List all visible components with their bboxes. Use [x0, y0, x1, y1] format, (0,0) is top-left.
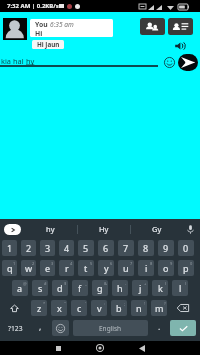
button[interactable]: Home: [92, 341, 108, 355]
button[interactable]: ,: [33, 320, 48, 336]
button[interactable]: Send: [178, 54, 198, 71]
staticText: l: [179, 282, 182, 294]
button[interactable]: Hy: [77, 219, 130, 239]
button[interactable]: f: [72, 280, 88, 296]
button[interactable]: j: [132, 280, 148, 296]
button[interactable]: Voice input: [184, 223, 196, 235]
button[interactable]: .: [152, 320, 166, 336]
staticText: x: [57, 302, 62, 314]
staticText: s: [38, 282, 43, 294]
button[interactable]: Backspace: [171, 300, 194, 316]
button[interactable]: t: [78, 260, 94, 276]
button[interactable]: Gy: [130, 219, 183, 239]
button[interactable]: e: [40, 260, 55, 276]
button[interactable]: Sound: [174, 41, 186, 51]
button[interactable]: Enter: [170, 320, 196, 336]
staticText: @: [23, 281, 27, 286]
staticText: t: [84, 262, 88, 274]
button[interactable]: l: [172, 280, 188, 296]
button[interactable]: 4: [59, 240, 74, 256]
button[interactable]: 2: [21, 240, 36, 256]
staticText: 1: [13, 261, 16, 266]
staticText: w: [25, 262, 33, 274]
button[interactable]: g: [92, 280, 108, 296]
staticText: Hy: [99, 224, 109, 234]
button[interactable]: y: [98, 260, 114, 276]
staticText: 8: [150, 261, 153, 266]
staticText: d: [57, 282, 63, 294]
staticText: .: [158, 321, 161, 333]
staticText: y: [104, 262, 109, 274]
button[interactable]: ?123: [2, 320, 29, 336]
staticText: +: [144, 281, 147, 286]
staticText: 7: [123, 242, 129, 254]
button[interactable]: You: [30, 19, 113, 37]
button[interactable]: m: [151, 300, 167, 316]
staticText: ?: [164, 301, 166, 306]
button[interactable]: r: [59, 260, 74, 276]
button[interactable]: Recents: [50, 341, 66, 355]
staticText: 9: [163, 242, 169, 254]
staticText: Hi: [35, 29, 43, 37]
staticText: h: [117, 282, 123, 294]
button[interactable]: w: [21, 260, 36, 276]
staticText: 0: [183, 242, 189, 254]
staticText: m: [155, 302, 164, 314]
staticText: ;: [124, 301, 126, 306]
staticText: Gy: [152, 224, 162, 234]
button[interactable]: v: [91, 300, 107, 316]
staticText: 1: [7, 242, 13, 254]
button[interactable]: 6: [98, 240, 114, 256]
staticText: ,: [39, 321, 42, 333]
button[interactable]: 1: [2, 240, 17, 256]
staticText: j: [139, 282, 142, 294]
button[interactable]: n: [131, 300, 147, 316]
button[interactable]: k: [152, 280, 168, 296]
button[interactable]: b: [111, 300, 127, 316]
staticText: z: [37, 302, 42, 314]
button[interactable]: a: [12, 280, 28, 296]
button[interactable]: 9: [158, 240, 174, 256]
staticText: u: [123, 262, 129, 274]
button[interactable]: d: [52, 280, 68, 296]
button[interactable]: More suggestions: [4, 224, 21, 235]
staticText: English: [99, 324, 122, 333]
button[interactable]: 3: [40, 240, 55, 256]
button[interactable]: p: [178, 260, 194, 276]
button[interactable]: Shift: [2, 300, 27, 316]
button[interactable]: s: [32, 280, 48, 296]
button[interactable]: 0: [178, 240, 194, 256]
staticText: hy: [46, 224, 55, 234]
staticText: 6: [103, 242, 109, 254]
staticText: !: [144, 301, 146, 306]
button[interactable]: u: [118, 260, 134, 276]
button[interactable]: 5: [78, 240, 94, 256]
button[interactable]: z: [31, 300, 47, 316]
staticText: (: [165, 281, 167, 286]
staticText: 6: [110, 261, 113, 266]
button[interactable]: Hi Jaun: [32, 40, 64, 49]
button[interactable]: English: [73, 320, 148, 336]
button[interactable]: hy: [24, 219, 77, 239]
staticText: ": [64, 301, 66, 306]
button[interactable]: h: [112, 280, 128, 296]
button[interactable]: Group: [140, 18, 165, 35]
button[interactable]: Contacts: [168, 18, 193, 35]
button[interactable]: 7: [118, 240, 134, 256]
staticText: 3: [51, 261, 54, 266]
button[interactable]: x: [51, 300, 67, 316]
button[interactable]: c: [71, 300, 87, 316]
button[interactable]: Emoji: [52, 320, 69, 336]
staticText: e: [45, 262, 51, 274]
button[interactable]: Emoji: [163, 56, 175, 68]
staticText: q: [7, 262, 13, 274]
staticText: 7:32 AM | 0.2KB/s: [7, 2, 59, 10]
staticText: $: [64, 281, 67, 286]
staticText: p: [183, 262, 189, 274]
button[interactable]: Back: [134, 341, 150, 355]
button[interactable]: o: [158, 260, 174, 276]
staticText: 8: [143, 242, 149, 254]
button[interactable]: q: [2, 260, 17, 276]
button[interactable]: 8: [138, 240, 154, 256]
button[interactable]: i: [138, 260, 154, 276]
